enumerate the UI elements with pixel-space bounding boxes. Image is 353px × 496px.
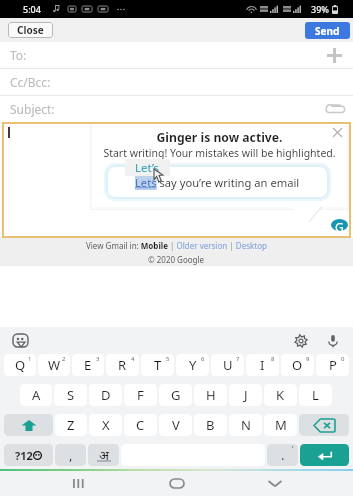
button[interactable]: H	[194, 384, 227, 406]
button[interactable]: Ginger	[331, 219, 348, 231]
staticText: M	[275, 416, 287, 434]
staticText: L	[312, 386, 319, 404]
button[interactable]: Back	[255, 471, 295, 496]
button[interactable]: Home	[157, 471, 197, 496]
staticText: F	[137, 386, 144, 404]
button[interactable]: G	[159, 384, 192, 406]
button[interactable]: U	[211, 354, 244, 376]
staticText: K	[276, 386, 285, 404]
button[interactable]: Cc/Bcc:	[0, 69, 353, 95]
staticText: B	[206, 416, 215, 434]
staticText: © 2020 Google	[148, 254, 205, 265]
staticText: ?12	[15, 448, 33, 463]
button[interactable]: Z	[55, 414, 87, 436]
staticText: ,	[69, 446, 73, 464]
staticText: 9	[306, 355, 310, 363]
button[interactable]: Send	[305, 22, 350, 39]
staticText: 1	[28, 355, 32, 363]
button[interactable]: J	[229, 384, 262, 406]
button[interactable]: Let’s	[125, 159, 170, 176]
staticText: 8	[271, 355, 275, 363]
staticText: 7	[236, 355, 240, 363]
staticText: V	[172, 416, 180, 434]
button[interactable]: Settings	[294, 334, 308, 348]
button[interactable]: L	[299, 384, 332, 406]
button[interactable]: O	[281, 354, 314, 376]
staticText: ’	[292, 444, 294, 455]
staticText: Ginger is now active.	[92, 129, 347, 146]
staticText: अ	[99, 446, 109, 464]
staticText: X	[102, 416, 110, 434]
button[interactable]: Voice input	[326, 334, 340, 348]
button[interactable]: ,	[55, 444, 86, 466]
staticText: R	[118, 356, 127, 374]
button[interactable]: To:	[0, 42, 353, 68]
staticText: C	[136, 416, 145, 434]
button[interactable]: P	[316, 354, 349, 376]
staticText: 6	[201, 355, 205, 363]
button[interactable]: T	[141, 354, 174, 376]
staticText: U	[223, 356, 233, 374]
staticText: 5	[166, 355, 170, 363]
staticText: A	[32, 386, 41, 404]
button[interactable]: Recents	[58, 471, 98, 496]
other: Add recipient	[327, 48, 342, 63]
staticText: Cc/Bcc:	[10, 74, 51, 90]
other: Attach file	[325, 104, 345, 114]
button[interactable]: Symbols	[4, 444, 53, 466]
staticText: 4	[131, 355, 135, 363]
button[interactable]: Shift	[4, 414, 53, 436]
button[interactable]: Backspace	[299, 414, 349, 436]
button[interactable]: Enter	[300, 444, 349, 466]
staticText: Y	[189, 356, 197, 374]
button[interactable]: S	[54, 384, 87, 406]
button[interactable]: I	[246, 354, 279, 376]
button[interactable]: A	[20, 384, 52, 406]
button[interactable]: V	[159, 414, 192, 436]
button[interactable]: M	[264, 414, 297, 436]
button[interactable]: N	[229, 414, 262, 436]
button[interactable]: W	[38, 354, 70, 376]
staticText: 39%	[311, 3, 329, 15]
staticText: P	[329, 356, 337, 374]
staticText: Close	[17, 23, 44, 37]
button[interactable]: D	[89, 384, 122, 406]
staticText: .	[281, 446, 285, 464]
staticText: 5:04	[23, 3, 41, 15]
staticText: Q	[15, 356, 26, 374]
button[interactable]: Q	[4, 354, 36, 376]
staticText: Start writing! Your mistakes will be hig…	[92, 146, 347, 160]
button[interactable]: C	[124, 414, 157, 436]
staticText: E	[84, 356, 92, 374]
staticText: Z	[67, 416, 75, 434]
button[interactable]: अ	[88, 444, 119, 466]
button[interactable]: Y	[176, 354, 209, 376]
staticText: J	[244, 386, 248, 404]
staticText: 0	[341, 355, 345, 363]
button[interactable]: X	[89, 414, 122, 436]
staticText: Lets say you’re writing an email	[135, 175, 300, 190]
button[interactable]: Emoji	[13, 334, 28, 347]
staticText: G	[335, 219, 344, 231]
staticText: W	[48, 356, 61, 374]
staticText: To:	[10, 47, 27, 63]
button[interactable]: Close	[8, 22, 53, 38]
staticText: H	[206, 386, 216, 404]
button[interactable]: Close	[333, 128, 342, 137]
staticText: 3	[96, 355, 100, 363]
button[interactable]: .	[267, 444, 298, 466]
staticText: Let’s	[135, 160, 160, 176]
button[interactable]: R	[106, 354, 139, 376]
staticText: Send	[315, 24, 340, 38]
button[interactable]: F	[124, 384, 157, 406]
staticText: D	[101, 386, 111, 404]
button[interactable]: B	[194, 414, 227, 436]
staticText: 2	[62, 355, 66, 363]
button[interactable]: K	[264, 384, 297, 406]
staticText: N	[241, 416, 251, 434]
button[interactable]: E	[72, 354, 104, 376]
staticText: T	[154, 356, 162, 374]
button[interactable]: Subject:	[0, 96, 353, 122]
staticText: Subject:	[10, 101, 55, 117]
